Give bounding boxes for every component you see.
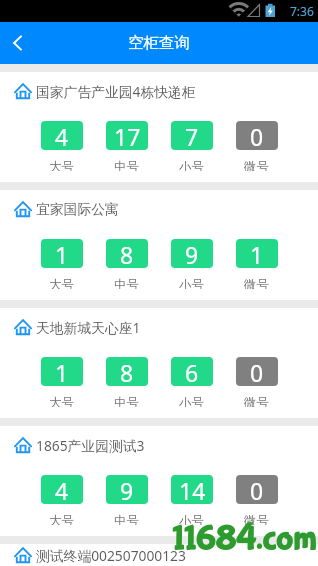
staticText: 14 <box>179 475 206 504</box>
button[interactable]: 天地新城天心座1 <box>0 308 318 418</box>
staticText: 大号 <box>49 513 74 525</box>
staticText: 微号 <box>244 277 269 289</box>
staticText: 天地新城天心座1 <box>36 318 141 337</box>
staticText: 中号 <box>114 277 139 289</box>
staticText: 中号 <box>114 513 139 525</box>
staticText: 0 <box>250 121 264 150</box>
staticText: 0 <box>250 475 264 504</box>
staticText: 0 <box>250 357 264 386</box>
staticText: 7 <box>185 121 199 150</box>
staticText: 小号 <box>179 513 204 525</box>
staticText: 4 <box>55 475 69 504</box>
staticText: 11684.com <box>172 519 316 560</box>
staticText: 中号 <box>114 159 139 171</box>
staticText: 17 <box>114 121 141 150</box>
staticText: 1 <box>250 239 264 268</box>
staticText: 4 <box>55 121 69 150</box>
staticText: 空柜查询 <box>128 33 190 53</box>
staticText: 小号 <box>179 159 204 171</box>
staticText: 大号 <box>49 159 74 171</box>
button[interactable]: 1865产业园测试3 <box>0 426 318 536</box>
staticText: 小号 <box>179 277 204 289</box>
staticText: 8 <box>120 357 134 386</box>
staticText: 测试终端002507000123 <box>36 546 186 565</box>
staticText: 中号 <box>114 395 139 407</box>
staticText: 微号 <box>244 395 269 407</box>
button[interactable]: Back <box>0 22 42 64</box>
staticText: 1865产业园测试3 <box>36 436 145 455</box>
button[interactable]: 国家广告产业园4栋快递柜 <box>0 72 318 182</box>
button[interactable]: 宜家国际公寓 <box>0 190 318 300</box>
staticText: 大号 <box>49 395 74 407</box>
staticText: 小号 <box>179 395 204 407</box>
staticText: 1 <box>55 357 69 386</box>
staticText: 1 <box>55 239 69 268</box>
staticText: 9 <box>185 239 199 268</box>
staticText: 微号 <box>244 159 269 171</box>
staticText: 7:36 <box>290 3 314 19</box>
staticText: 国家广告产业园4栋快递柜 <box>36 82 196 101</box>
staticText: 大号 <box>49 277 74 289</box>
button[interactable]: 测试终端002507000123 <box>0 544 318 566</box>
staticText: 微号 <box>244 513 269 525</box>
staticText: 宜家国际公寓 <box>36 201 119 218</box>
staticText: 9 <box>120 475 134 504</box>
staticText: 6 <box>185 357 199 386</box>
staticText: 8 <box>120 239 134 268</box>
